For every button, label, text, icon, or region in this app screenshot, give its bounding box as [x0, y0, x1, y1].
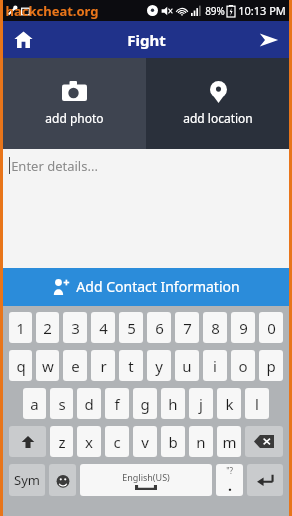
staticText: o [238, 356, 248, 376]
button[interactable]: 8 [203, 312, 227, 343]
button[interactable]: m [217, 426, 241, 457]
button[interactable]: r [91, 350, 115, 381]
button[interactable]: n [189, 426, 213, 457]
button[interactable]: Home [3, 21, 43, 58]
staticText: a [30, 394, 39, 414]
staticText: add location [183, 110, 253, 126]
staticText: f [114, 394, 120, 414]
button[interactable]: w [36, 350, 59, 381]
button[interactable]: c [105, 426, 129, 457]
button[interactable]: 0 [259, 312, 283, 343]
button[interactable]: l [245, 388, 269, 419]
button[interactable]: t [119, 350, 143, 381]
button[interactable]: 2 [36, 312, 59, 343]
staticText: i [213, 356, 217, 376]
button[interactable]: add location [146, 58, 289, 149]
button[interactable]: s [50, 388, 73, 419]
staticText: 2 [43, 318, 52, 338]
staticText: . [228, 476, 232, 495]
button[interactable]: i [203, 350, 227, 381]
button[interactable]: Enter [247, 464, 283, 496]
button[interactable]: 9 [231, 312, 255, 343]
staticText: 5 [127, 318, 136, 338]
staticText: t [128, 356, 134, 376]
staticText: j [199, 394, 203, 414]
staticText: r [100, 356, 107, 376]
staticText: b [168, 432, 178, 452]
staticText: p [266, 356, 276, 376]
staticText: English(US) [122, 471, 170, 483]
staticText: 0 [267, 318, 276, 338]
staticText: l [255, 394, 259, 414]
button[interactable]: add photo [3, 58, 146, 149]
button[interactable]: d [77, 388, 101, 419]
staticText: m [222, 432, 237, 452]
staticText: Sym [14, 471, 40, 489]
button[interactable]: u [175, 350, 199, 381]
button[interactable]: o [231, 350, 255, 381]
button[interactable]: j [189, 388, 213, 419]
button[interactable]: 1 [9, 312, 32, 343]
button[interactable]: h [161, 388, 185, 419]
staticText: k [225, 394, 234, 414]
staticText: w [42, 356, 54, 376]
staticText: add photo [45, 110, 104, 126]
staticText: Enter details... [11, 157, 98, 175]
button[interactable]: 6 [147, 312, 171, 343]
staticText: Fight [127, 30, 166, 50]
staticText: q [16, 356, 26, 376]
button[interactable]: Space [80, 464, 212, 496]
staticText: u [182, 356, 192, 376]
button[interactable]: v [133, 426, 157, 457]
button[interactable]: Add Contact Information [3, 268, 289, 305]
button[interactable]: f [105, 388, 129, 419]
button[interactable]: Backspace [245, 426, 283, 457]
staticText: 8 [211, 318, 220, 338]
staticText: y [155, 356, 163, 376]
button[interactable]: 7 [175, 312, 199, 343]
staticText: 9 [239, 318, 248, 338]
button[interactable]: 3 [63, 312, 87, 343]
button[interactable]: z [50, 426, 73, 457]
button[interactable]: Shift [9, 426, 46, 457]
button[interactable]: e [63, 350, 87, 381]
button[interactable]: y [147, 350, 171, 381]
staticText: s [58, 394, 66, 414]
staticText: 6 [155, 318, 164, 338]
staticText: "? [226, 465, 233, 476]
staticText: 7 [183, 318, 192, 338]
staticText: g [140, 394, 150, 414]
button[interactable]: k [217, 388, 241, 419]
button[interactable]: Enter details... [3, 149, 289, 268]
button[interactable]: Emoji [49, 464, 76, 496]
staticText: 4 [99, 318, 108, 338]
button[interactable]: q [9, 350, 32, 381]
button[interactable]: 5 [119, 312, 143, 343]
staticText: e [71, 356, 80, 376]
staticText: n [196, 432, 206, 452]
staticText: z [58, 432, 66, 452]
staticText: 3 [71, 318, 80, 338]
button[interactable]: "? [216, 464, 243, 496]
button[interactable]: b [161, 426, 185, 457]
staticText: 1 [16, 318, 25, 338]
button[interactable]: a [23, 388, 46, 419]
staticText: c [113, 432, 121, 452]
button[interactable]: g [133, 388, 157, 419]
button[interactable]: 4 [91, 312, 115, 343]
staticText: v [141, 432, 149, 452]
button[interactable]: Sym [9, 464, 45, 496]
staticText: 10:13 PM [238, 3, 286, 18]
button[interactable]: p [259, 350, 283, 381]
button[interactable]: Send [249, 21, 289, 58]
staticText: Add Contact Information [76, 277, 240, 296]
staticText: 89% [205, 4, 225, 18]
staticText: x [85, 432, 93, 452]
staticText: d [84, 394, 94, 414]
staticText: h [168, 394, 178, 414]
staticText: hackcheat.org [5, 2, 99, 20]
button[interactable]: x [77, 426, 101, 457]
